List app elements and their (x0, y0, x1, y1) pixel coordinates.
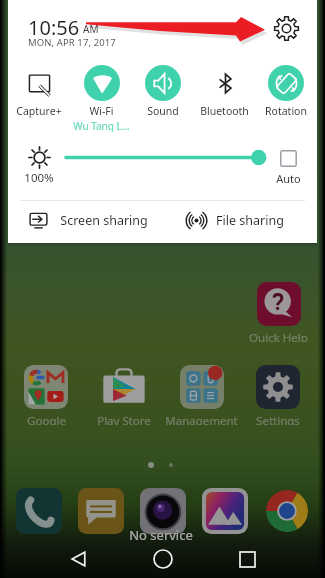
button[interactable]: Settings (239, 365, 317, 425)
button[interactable]: Google (7, 365, 85, 425)
button[interactable]: Settings (270, 12, 302, 44)
staticText: MON, APR 17, 2017 (28, 36, 116, 49)
staticText: Google (27, 413, 66, 425)
button[interactable]: Back (68, 548, 90, 570)
button[interactable]: Home (152, 548, 174, 570)
button[interactable]: Chrome (264, 488, 310, 534)
button[interactable]: Capture+ (7, 60, 71, 132)
staticText: Bluetooth (200, 104, 249, 118)
staticText: File sharing (216, 212, 284, 229)
button[interactable]: Sound (131, 60, 195, 132)
button[interactable]: Rotation (254, 60, 318, 132)
staticText: 100% (24, 170, 54, 186)
button[interactable]: Bluetooth (192, 60, 256, 132)
staticText: Play Store (97, 413, 151, 425)
staticText: Rotation (265, 104, 307, 118)
button[interactable]: Recents (236, 548, 258, 570)
staticText: 10:56 (28, 14, 80, 41)
button[interactable]: Camera (140, 488, 186, 534)
staticText: Sound (147, 104, 179, 118)
button[interactable]: Brightness slider (58, 147, 268, 168)
button[interactable]: Screen sharing (28, 206, 180, 234)
button[interactable]: Wi-Fi (69, 60, 133, 132)
button[interactable]: File sharing (185, 206, 315, 234)
staticText: Settings (256, 413, 300, 425)
staticText: Quick Help (249, 330, 308, 342)
staticText: Management (165, 413, 238, 425)
button[interactable]: Messages (78, 488, 124, 534)
button[interactable]: Management (162, 365, 240, 425)
button[interactable]: Gallery (202, 488, 248, 534)
button[interactable]: Brightness (19, 146, 59, 188)
staticText: Screen sharing (60, 212, 148, 229)
button[interactable]: Auto (268, 150, 308, 190)
staticText: Auto (276, 171, 301, 186)
staticText: AM (83, 22, 99, 36)
staticText: Wu Tang L... (73, 119, 130, 132)
button[interactable]: Phone (16, 488, 62, 534)
button[interactable]: Quick Help (239, 282, 317, 342)
button[interactable]: Play Store (85, 365, 163, 425)
staticText: No service (129, 526, 193, 544)
staticText: Capture+ (16, 104, 62, 118)
staticText: Wi-Fi (89, 104, 114, 118)
